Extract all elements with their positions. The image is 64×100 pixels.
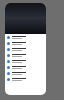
button[interactable] [5,70,46,76]
button[interactable] [5,46,46,52]
button[interactable] [5,64,46,70]
button[interactable] [5,52,46,58]
button[interactable] [5,40,46,46]
button[interactable] [5,76,46,82]
button[interactable] [5,58,46,64]
button[interactable] [5,34,46,40]
